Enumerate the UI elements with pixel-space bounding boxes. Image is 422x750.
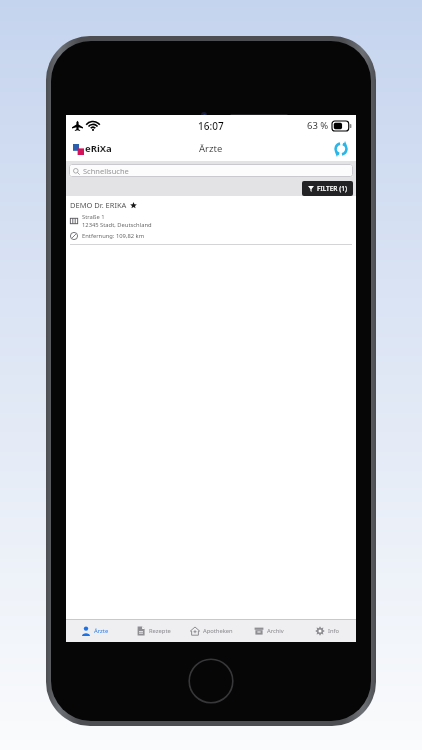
staticText: Ärzte (199, 142, 223, 155)
button[interactable]: Apotheken (182, 620, 240, 642)
button[interactable]: FILTER (1) (302, 181, 353, 196)
staticText: Entfernung: 109,82 km (82, 232, 145, 240)
staticText: Ärzte (94, 627, 109, 635)
staticText: eRiXa (85, 142, 112, 155)
button[interactable]: Rezepte (124, 620, 182, 642)
staticText: Schnellsuche (83, 166, 129, 176)
button[interactable]: Schnellsuche (69, 164, 353, 177)
button[interactable]: Aktualisieren (332, 140, 350, 158)
staticText: Info (328, 627, 340, 635)
staticText: 63 % (307, 119, 329, 132)
button[interactable]: Archiv (240, 620, 298, 642)
staticText: FILTER (1) (317, 184, 347, 193)
staticText: DEMO Dr. ERIKA (70, 200, 127, 210)
staticText: 16:07 (198, 119, 224, 133)
staticText: Archiv (267, 627, 284, 635)
staticText: Rezepte (149, 627, 171, 635)
staticText: 12345 Stadt, Deutschland (82, 221, 152, 229)
staticText: Straße 1 (82, 213, 105, 221)
button[interactable]: Ärzte (66, 620, 124, 642)
staticText: Apotheken (203, 627, 233, 635)
button[interactable]: Info (298, 620, 356, 642)
button[interactable]: eRiXa (73, 142, 112, 155)
button[interactable]: DEMO Dr. ERIKA (66, 196, 356, 249)
